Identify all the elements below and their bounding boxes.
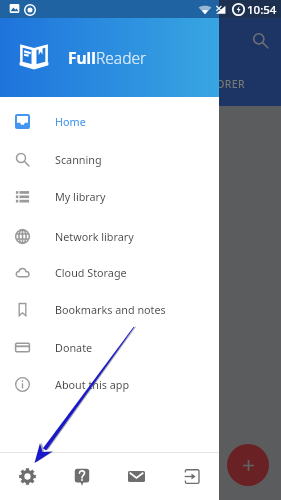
staticText: 10:54 bbox=[247, 2, 277, 18]
button[interactable]: Network library bbox=[0, 217, 219, 255]
staticText: Home bbox=[55, 114, 86, 129]
button[interactable]: Cloud Storage bbox=[0, 253, 219, 291]
staticText: Reader bbox=[96, 47, 147, 68]
button[interactable]: Home bbox=[0, 102, 219, 140]
staticText: Scanning bbox=[55, 152, 102, 167]
staticText: Bookmarks and notes bbox=[55, 302, 166, 317]
button[interactable]: Donate bbox=[0, 328, 219, 366]
button[interactable]: Exit bbox=[164, 453, 219, 500]
staticText: EXPLORER bbox=[191, 77, 245, 91]
button[interactable]: Mail bbox=[109, 453, 164, 500]
staticText: Donate bbox=[55, 340, 93, 355]
staticText: Full bbox=[68, 47, 96, 68]
button[interactable]: About this app bbox=[0, 365, 219, 403]
button[interactable]: Search bbox=[252, 32, 269, 49]
button[interactable]: Help bbox=[54, 453, 109, 500]
staticText: About this app bbox=[55, 377, 130, 392]
button[interactable]: My library bbox=[0, 177, 219, 215]
staticText: My library bbox=[55, 189, 106, 204]
button[interactable]: Scanning bbox=[0, 140, 219, 178]
button[interactable]: Add bbox=[227, 444, 269, 486]
button[interactable]: Bookmarks and notes bbox=[0, 290, 219, 328]
button[interactable]: Settings bbox=[0, 453, 54, 500]
staticText: Network library bbox=[55, 229, 134, 244]
staticText: Cloud Storage bbox=[55, 265, 127, 280]
